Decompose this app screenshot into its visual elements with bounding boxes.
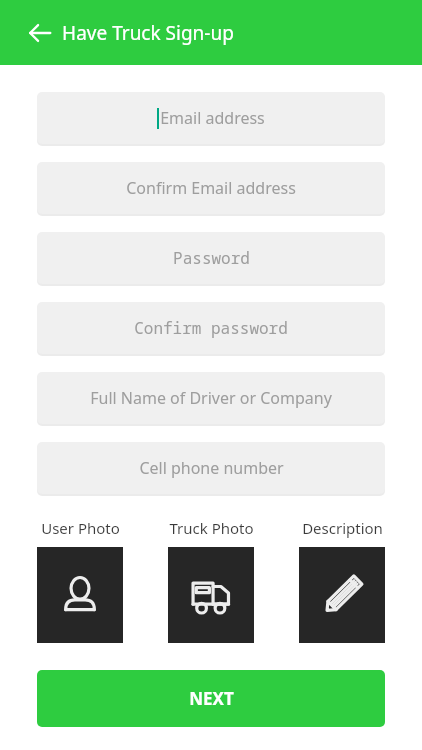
staticText: Have Truck Sign-up [62, 20, 234, 46]
button[interactable]: Password [37, 232, 385, 286]
staticText: Truck Photo [169, 518, 254, 538]
button[interactable]: Description [299, 547, 385, 643]
button[interactable]: Confirm password [37, 302, 385, 356]
button[interactable]: Confirm Email address [37, 162, 385, 216]
button[interactable]: Email address [37, 92, 385, 146]
staticText: NEXT [189, 687, 234, 710]
button[interactable]: Truck Photo [168, 547, 254, 643]
staticText: Confirm password [134, 317, 288, 339]
button[interactable]: Cell phone number [37, 442, 385, 496]
staticText: User Photo [41, 518, 120, 538]
staticText: Description [302, 518, 383, 538]
button[interactable]: User Photo [37, 547, 123, 643]
button[interactable]: NEXT [37, 670, 385, 727]
staticText: Password [173, 247, 250, 269]
staticText: Email address [160, 107, 265, 129]
staticText: Confirm Email address [126, 177, 296, 199]
button[interactable]: Full Name of Driver or Company [37, 372, 385, 426]
staticText: Cell phone number [139, 457, 284, 479]
staticText: Full Name of Driver or Company [90, 387, 332, 409]
button[interactable]: Back [22, 15, 58, 51]
